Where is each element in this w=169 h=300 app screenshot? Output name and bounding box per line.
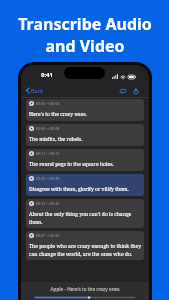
staticText: Disagree with them, glorify or vilify th…	[29, 186, 129, 193]
button[interactable]: 00:25 → 00:28	[26, 174, 144, 196]
staticText: 00:25 → 00:28	[36, 176, 60, 181]
staticText: The misfits, the rebels.	[29, 136, 83, 143]
button[interactable]: 00:47 → 00:50	[26, 231, 144, 260]
staticText: The round pegs in the square holes.	[29, 161, 114, 168]
staticText: Here's to the crazy ones.	[29, 111, 87, 118]
button[interactable]: Back	[26, 87, 44, 94]
staticText: 00:06 → 00:08	[36, 126, 60, 131]
staticText: Back	[31, 87, 44, 94]
staticText: 9:41	[41, 71, 53, 79]
button[interactable]: 00:33 → 00:35	[26, 199, 144, 228]
staticText: 00:11 → 00:13	[36, 151, 60, 156]
staticText: The people who are crazy enough to think…	[29, 243, 141, 257]
staticText: About the only thing you can't do is cha…	[29, 211, 141, 225]
button[interactable]: Share	[133, 88, 139, 94]
button[interactable]: 00:03 → 00:04	[26, 99, 144, 121]
staticText: Transcribe Audio and Video	[18, 13, 152, 57]
staticText: 00:03 → 00:04	[36, 101, 60, 106]
staticText: Apple - Here's to the crazy ones	[21, 286, 149, 292]
button[interactable]: 00:11 → 00:13	[26, 149, 144, 171]
button[interactable]: Comments	[120, 88, 126, 94]
staticText: 00:47 → 00:50	[36, 233, 60, 238]
button[interactable]: 00:06 → 00:08	[26, 124, 144, 146]
staticText: 00:33 → 00:35	[36, 201, 60, 206]
